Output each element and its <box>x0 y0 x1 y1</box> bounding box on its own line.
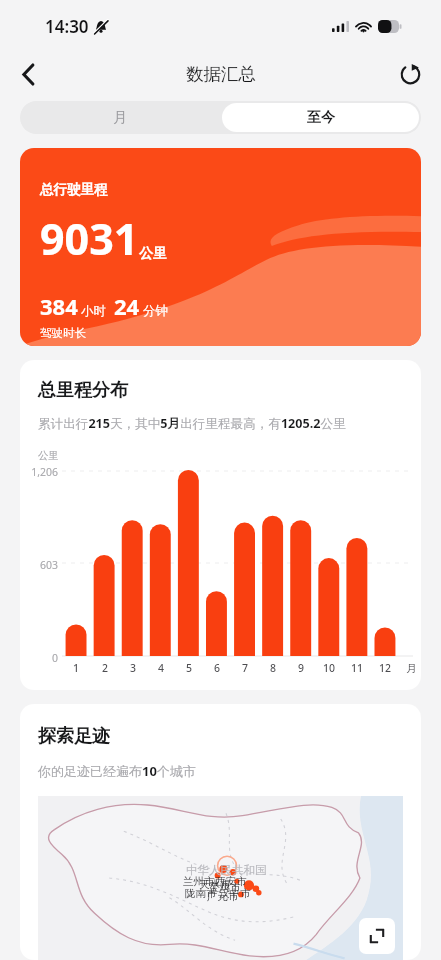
button[interactable]: Refresh <box>390 54 430 94</box>
staticText: 24 <box>114 291 140 321</box>
staticText: 总里程分布 <box>38 379 128 402</box>
staticText: 总行驶里程 <box>40 181 108 198</box>
staticText: 5 <box>186 661 193 675</box>
staticText: 天水市 <box>199 878 231 891</box>
staticText: 11 <box>351 661 364 675</box>
staticText: 公里 <box>139 245 167 263</box>
staticText: 公里 <box>38 449 59 462</box>
staticText: 分钟 <box>143 303 168 319</box>
staticText: 驾驶时长 <box>40 326 86 340</box>
staticText: 月 <box>113 109 127 127</box>
staticText: 广元市 <box>207 890 239 903</box>
staticText: 1,206 <box>31 465 58 479</box>
staticText: 6 <box>214 661 221 675</box>
button[interactable]: Map of visited cities <box>38 796 403 960</box>
staticText: 4 <box>158 661 165 675</box>
staticText: 9 <box>298 661 305 675</box>
button[interactable]: Back <box>8 54 48 94</box>
staticText: 月 <box>406 662 417 675</box>
staticText: 你的足迹已经遍布10个城市 <box>38 762 196 780</box>
staticText: 14:30 <box>45 15 89 38</box>
staticText: 2 <box>102 661 109 675</box>
staticText: 中华人民共和国 <box>186 863 267 877</box>
staticText: 西安市 <box>215 875 247 888</box>
staticText: 12 <box>379 661 392 675</box>
staticText: 汉中市 <box>219 887 251 900</box>
staticText: 陇南市 <box>185 887 217 900</box>
staticText: 兰州市 <box>183 875 215 888</box>
staticText: 8 <box>270 661 277 675</box>
staticText: 10 <box>323 661 336 675</box>
button[interactable]: 月 <box>20 101 220 134</box>
staticText: 至今 <box>307 109 335 127</box>
staticText: 累计出行215天，其中5月出行里程最高，有1205.2公里 <box>38 415 346 432</box>
staticText: 1 <box>73 661 80 675</box>
staticText: 宝鸡市 <box>209 881 241 894</box>
staticText: 7 <box>242 661 249 675</box>
staticText: 9031 <box>40 209 139 268</box>
staticText: 384 <box>40 291 78 321</box>
staticText: 3 <box>130 661 137 675</box>
button[interactable]: 至今 <box>222 103 419 132</box>
staticText: 数据汇总 <box>186 63 256 85</box>
staticText: 小时 <box>81 303 106 319</box>
staticText: 0 <box>51 651 58 665</box>
button[interactable]: 总行驶里程 <box>20 148 421 346</box>
staticText: 603 <box>39 558 58 572</box>
button[interactable]: Fullscreen <box>359 918 395 954</box>
staticText: 探索足迹 <box>38 725 110 748</box>
